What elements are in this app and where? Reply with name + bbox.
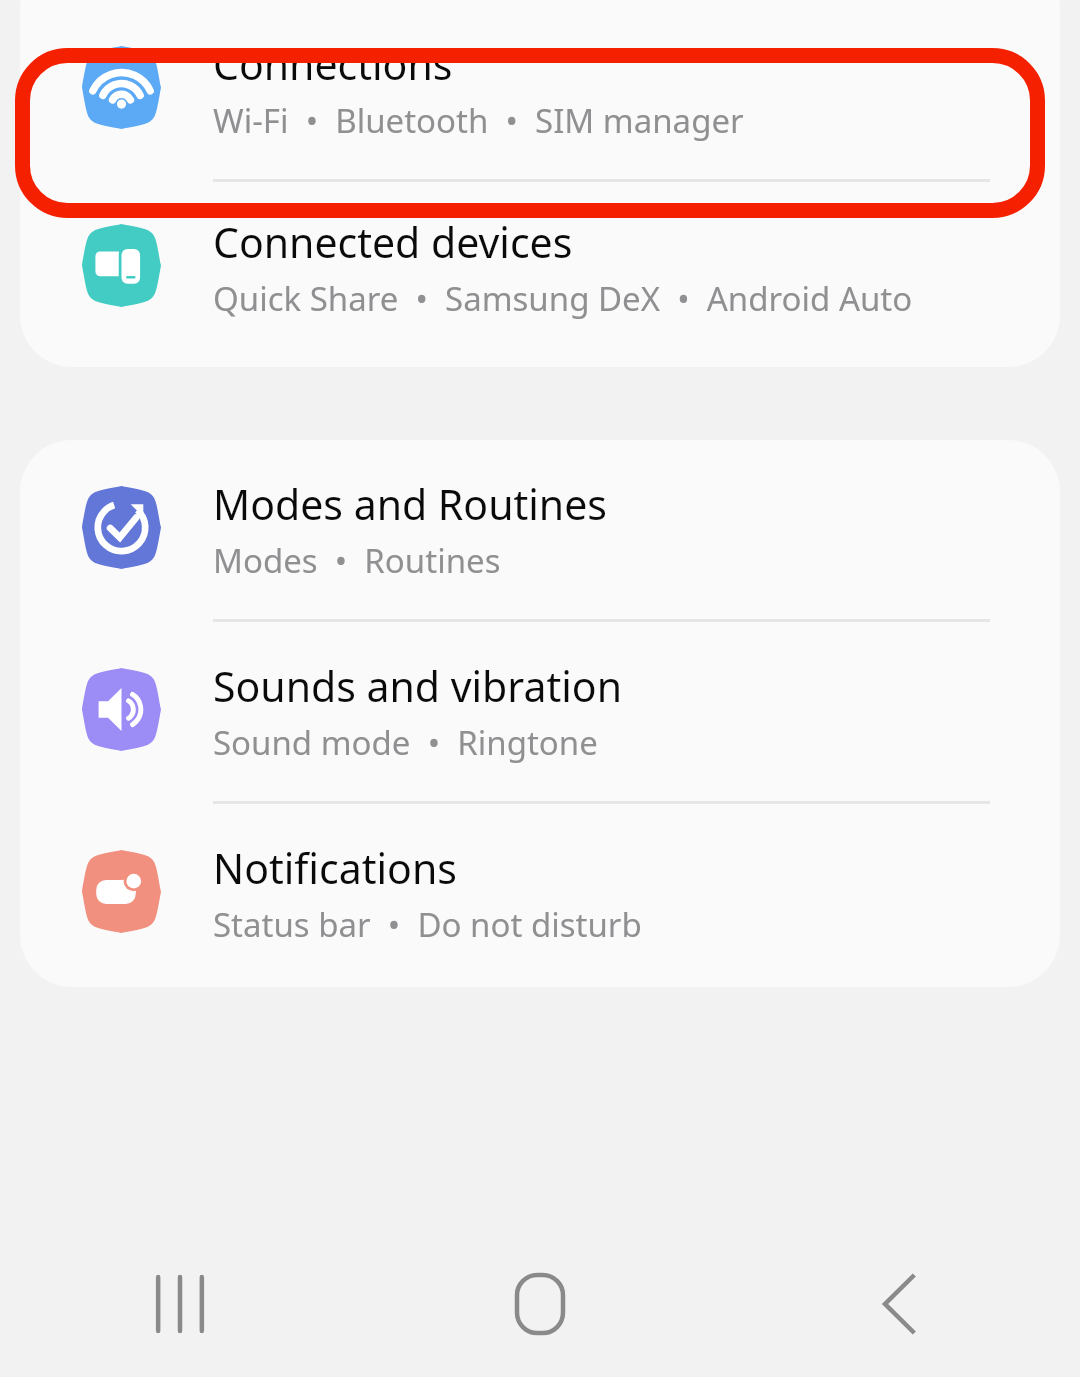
button[interactable]: Sounds and vibration	[20, 622, 1060, 801]
staticText: Notifications	[213, 840, 457, 896]
staticText: Connections	[213, 36, 453, 92]
staticText: Quick Share • Samsung DeX • Android Auto	[213, 276, 913, 321]
button[interactable]: Connections	[20, 0, 1060, 179]
button[interactable]: Recent apps	[105, 1244, 255, 1364]
button[interactable]: Home	[465, 1244, 615, 1364]
staticText: Modes • Routines	[213, 538, 501, 583]
staticText: Modes and Routines	[213, 476, 607, 532]
staticText: Connected devices	[213, 214, 573, 270]
staticText: Sounds and vibration	[213, 658, 622, 714]
button[interactable]: Notifications	[20, 804, 1060, 987]
staticText: Sound mode • Ringtone	[213, 720, 598, 765]
button[interactable]: Back	[825, 1244, 975, 1364]
staticText: Wi-Fi • Bluetooth • SIM manager	[213, 98, 744, 143]
staticText: Status bar • Do not disturb	[213, 902, 642, 947]
button[interactable]: Connected devices	[20, 182, 1060, 367]
button[interactable]: Modes and Routines	[20, 440, 1060, 619]
